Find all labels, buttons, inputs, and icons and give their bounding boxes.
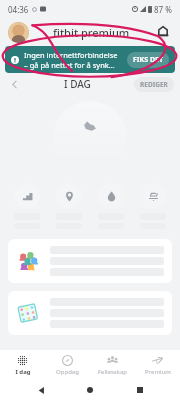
staticText: Oppdag: [56, 368, 79, 376]
button[interactable]: Oversikt: [131, 381, 149, 399]
staticText: fitbit premium: [53, 25, 130, 40]
button[interactable]: Distanse: [48, 183, 90, 229]
button[interactable]: Premium: [135, 350, 180, 380]
staticText: I dag: [15, 368, 31, 376]
button[interactable]: Hjem: [81, 381, 99, 399]
button[interactable]: Varsler: [154, 23, 172, 41]
button[interactable]: REDIGER: [134, 77, 174, 92]
staticText: REDIGER: [140, 80, 168, 89]
button[interactable]: Etasjer: [6, 183, 48, 229]
button[interactable]: I dag: [0, 350, 45, 380]
button[interactable]: Tilbake: [6, 76, 22, 92]
button[interactable]: Skritt: [53, 101, 127, 175]
staticText: Fellesskap: [98, 368, 127, 376]
staticText: I DAG: [64, 77, 91, 91]
button[interactable]: Profil: [8, 22, 29, 43]
staticText: FIKS DET: [133, 55, 163, 65]
button[interactable]: Kalorier: [90, 183, 132, 229]
button[interactable]: Fellesskap: [90, 350, 135, 380]
staticText: – gå på nettet for å synk…: [24, 60, 115, 70]
button[interactable]: Ingen internettforbindelse: [5, 46, 175, 73]
button[interactable]: [8, 291, 172, 335]
button[interactable]: FIKS DET: [127, 52, 169, 68]
staticText: 04:36: [8, 4, 29, 15]
button[interactable]: Oppdag: [45, 350, 90, 380]
staticText: Premium: [145, 368, 171, 376]
button[interactable]: [8, 239, 172, 283]
staticText: 87 %: [154, 4, 172, 15]
button[interactable]: Aktive minutter: [132, 183, 174, 229]
staticText: Ingen internettforbindelse: [24, 50, 118, 60]
button[interactable]: Tilbake: [32, 381, 50, 399]
